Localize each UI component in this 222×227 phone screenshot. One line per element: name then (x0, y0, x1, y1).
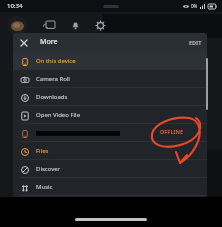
button[interactable] (13, 124, 207, 142)
staticText: Camera Roll (36, 75, 70, 83)
button[interactable]: Cast (43, 18, 57, 32)
staticText: Files (36, 147, 49, 155)
button[interactable]: Downloads (13, 88, 207, 106)
staticText: 0% (191, 3, 198, 9)
staticText: 10:34 (7, 2, 23, 10)
staticText: On this device (36, 57, 76, 65)
button[interactable]: Files (13, 142, 207, 160)
button[interactable]: Open Video File (13, 106, 207, 124)
staticText: OFFLINE (160, 128, 184, 135)
staticText: Music (36, 183, 53, 191)
button[interactable]: Settings (93, 18, 107, 32)
button[interactable]: Profile (8, 16, 27, 35)
button[interactable]: Discover (13, 160, 207, 178)
button[interactable]: Music (13, 178, 207, 196)
button[interactable]: OFFLINE (160, 128, 184, 135)
button[interactable]: EDIT (189, 39, 202, 46)
staticText: Downloads (36, 93, 68, 101)
button[interactable]: On this device (13, 52, 207, 70)
button[interactable]: Close (17, 36, 30, 49)
staticText: More (40, 37, 58, 47)
staticText: EDIT (189, 39, 202, 46)
staticText: Open Video File (36, 111, 81, 119)
button[interactable]: Camera Roll (13, 70, 207, 88)
button[interactable]: Notifications (68, 18, 82, 32)
staticText: Discover (36, 165, 61, 173)
